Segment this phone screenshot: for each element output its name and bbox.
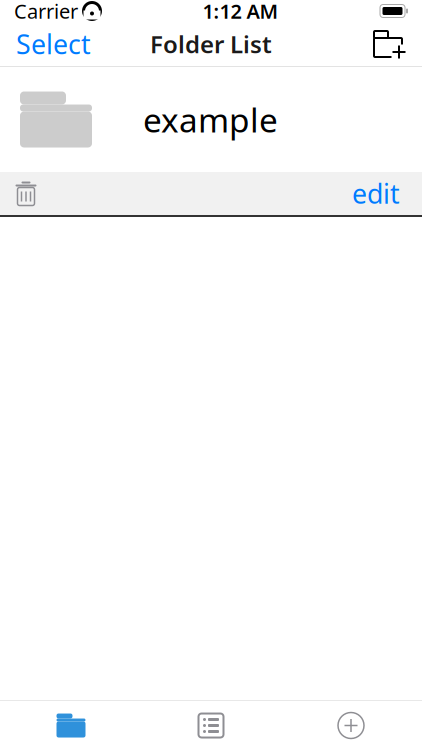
button[interactable]: edit	[330, 172, 422, 215]
button[interactable]: New Folder	[354, 22, 422, 66]
staticText: 1:12 AM	[202, 0, 278, 24]
button[interactable]: Folders	[1, 701, 141, 750]
button[interactable]: List	[141, 701, 281, 750]
button[interactable]: Add	[281, 701, 421, 750]
staticText: Carrier	[14, 0, 78, 24]
staticText: Folder List	[150, 28, 272, 60]
staticText: example	[143, 97, 278, 142]
staticText: Select	[16, 26, 91, 62]
button[interactable]: Delete	[0, 172, 52, 215]
button[interactable]: Select	[0, 22, 107, 66]
staticText: edit	[352, 176, 400, 211]
button[interactable]: example	[0, 67, 422, 172]
